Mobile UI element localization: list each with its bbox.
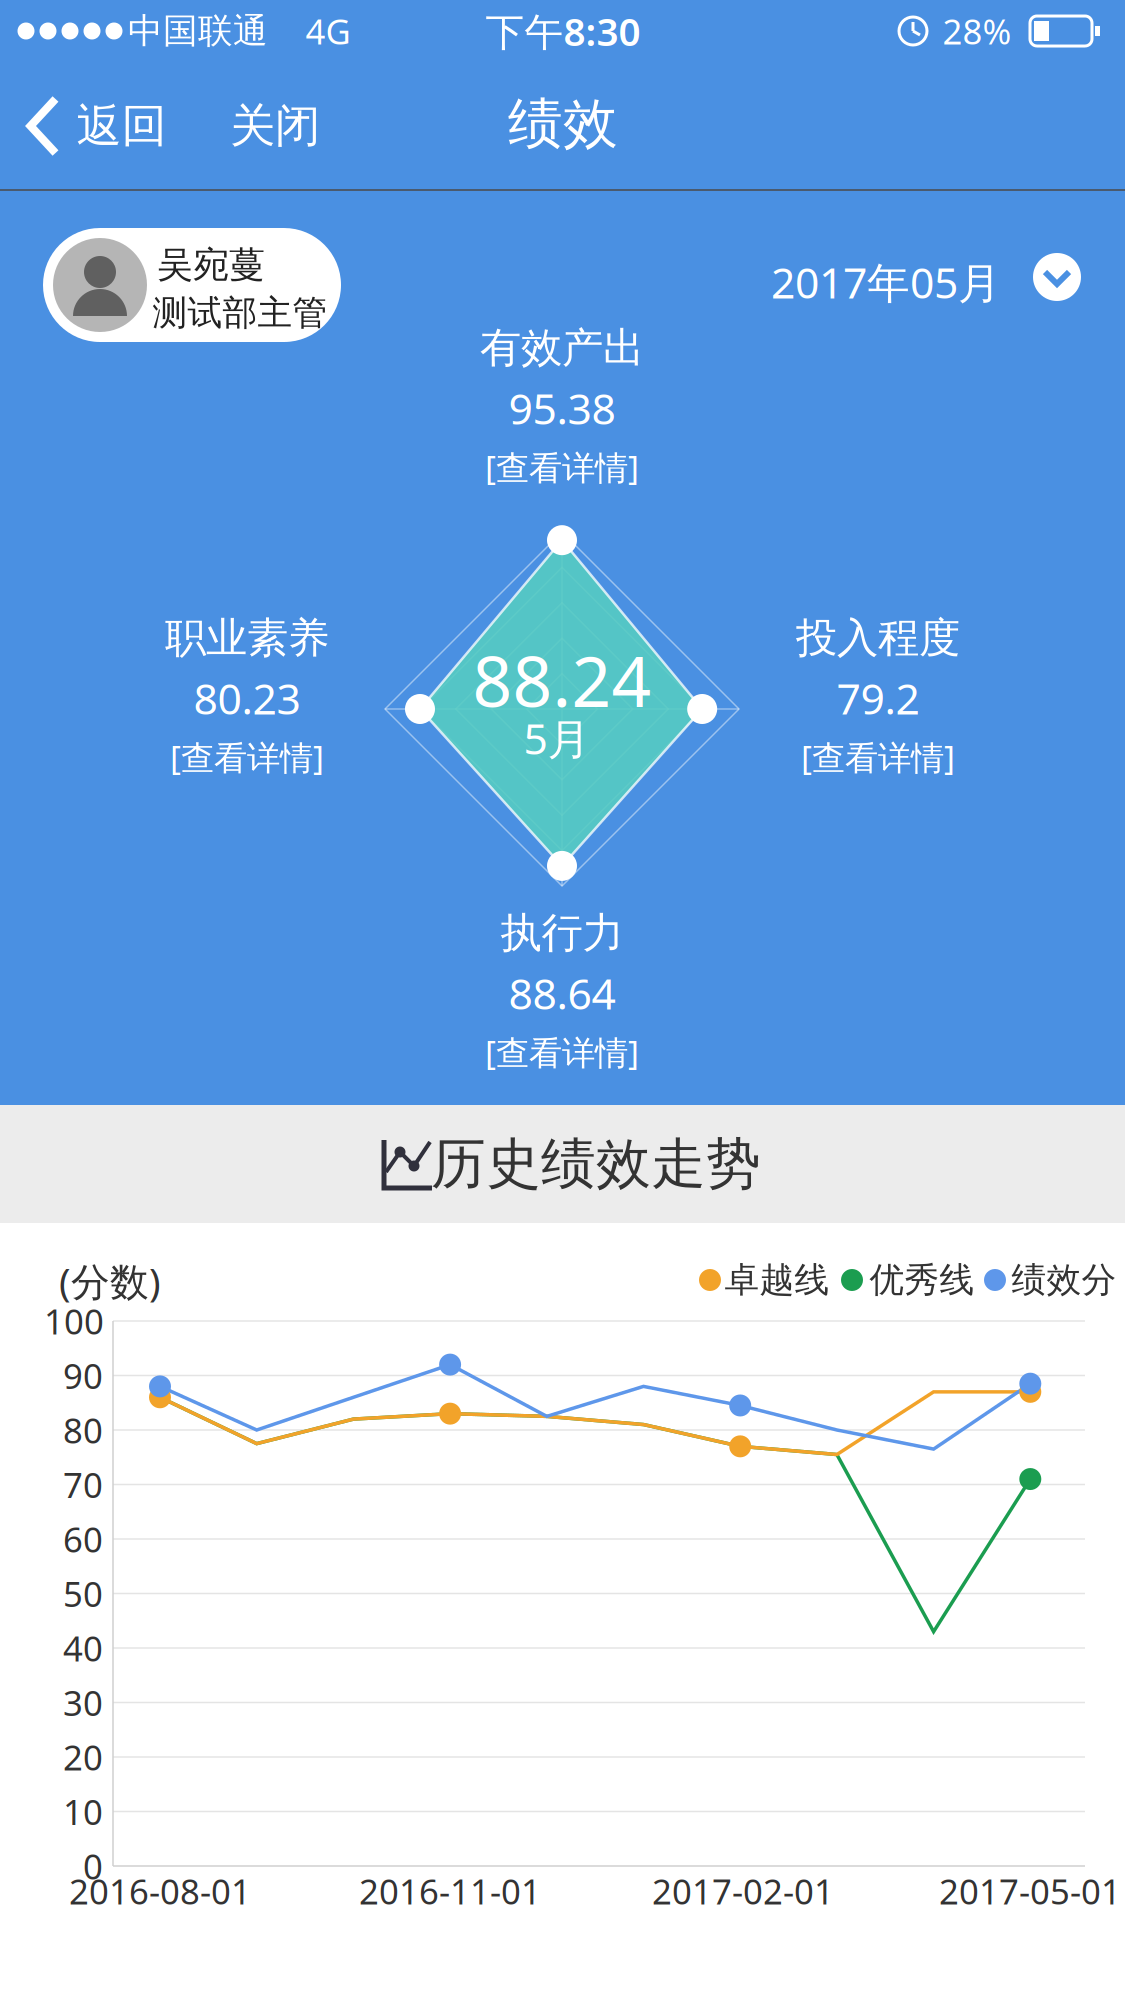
staticText: 2017-05-01 [939, 1868, 1121, 1914]
staticText: 吴宛蔓 [157, 243, 265, 287]
staticText: [查看详情] [801, 735, 955, 779]
button[interactable]: 返回 [25, 95, 166, 157]
staticText: 返回 [76, 98, 166, 154]
staticText: 4G [305, 8, 350, 54]
staticText: 40 [63, 1625, 103, 1671]
staticText: 88.24 [472, 634, 651, 726]
staticText: 90 [63, 1352, 103, 1398]
staticText: 0 [83, 1843, 103, 1889]
staticText: 20 [63, 1734, 103, 1780]
staticText: 79.2 [836, 670, 919, 726]
staticText: [查看详情] [485, 1030, 639, 1074]
staticText: 2016-08-01 [69, 1868, 251, 1914]
staticText: [查看详情] [170, 735, 324, 779]
staticText: 88.64 [508, 965, 615, 1021]
staticText: 28% [942, 8, 1011, 54]
staticText: 优秀线 [869, 1259, 974, 1301]
button[interactable]: 2017年05月 [779, 249, 1081, 305]
staticText: 历史绩效走势 [431, 1130, 761, 1197]
staticText: 绩效分 [1011, 1259, 1116, 1301]
staticText: 70 [63, 1461, 103, 1507]
staticText: 100 [44, 1298, 104, 1344]
staticText: 中国联通 [128, 10, 268, 52]
staticText: (分数) [59, 1255, 161, 1307]
staticText: 卓越线 [724, 1259, 829, 1301]
button[interactable]: 吴宛蔓 [43, 228, 341, 342]
button[interactable]: [查看详情] [801, 735, 955, 779]
staticText: 执行力 [500, 908, 623, 958]
staticText: 95.38 [508, 380, 615, 436]
staticText: 60 [63, 1516, 103, 1562]
button[interactable]: 关闭 [230, 98, 320, 154]
staticText: [查看详情] [485, 445, 639, 489]
staticText: 绩效 [508, 90, 618, 157]
staticText: 2017年05月 [771, 254, 1001, 310]
staticText: 关闭 [230, 98, 320, 154]
button[interactable]: [查看详情] [485, 1030, 639, 1074]
staticText: 下午8:30 [485, 5, 640, 57]
staticText: 10 [63, 1788, 103, 1834]
staticText: 有效产出 [480, 323, 644, 373]
button[interactable]: [查看详情] [485, 445, 639, 489]
staticText: 5月 [523, 710, 590, 766]
staticText: 80 [63, 1407, 103, 1453]
staticText: 投入程度 [796, 613, 960, 663]
staticText: 职业素养 [165, 613, 329, 663]
staticText: 测试部主管 [152, 292, 327, 334]
staticText: 2017-02-01 [652, 1868, 834, 1914]
staticText: 50 [63, 1570, 103, 1616]
button[interactable]: [查看详情] [170, 735, 324, 779]
staticText: 80.23 [193, 670, 300, 726]
staticText: 30 [63, 1679, 103, 1725]
staticText: 2016-11-01 [359, 1868, 541, 1914]
